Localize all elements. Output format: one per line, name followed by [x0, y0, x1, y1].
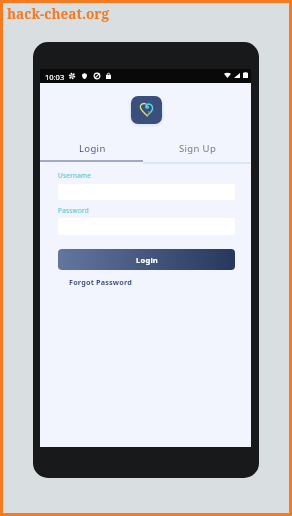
staticText: Login: [79, 142, 106, 155]
button[interactable]: Login: [40, 138, 145, 158]
button[interactable]: Forgot Password: [69, 277, 133, 287]
staticText: Username: [58, 171, 92, 180]
staticText: Forgot Password: [69, 277, 133, 287]
staticText: Sign Up: [179, 142, 217, 155]
staticText: Login: [136, 255, 158, 265]
button[interactable]: Sign Up: [145, 138, 251, 158]
staticText: hack-cheat.org: [7, 4, 109, 23]
button[interactable]: Login: [58, 249, 235, 270]
staticText: 10:03: [45, 72, 65, 82]
staticText: Password: [58, 206, 89, 215]
